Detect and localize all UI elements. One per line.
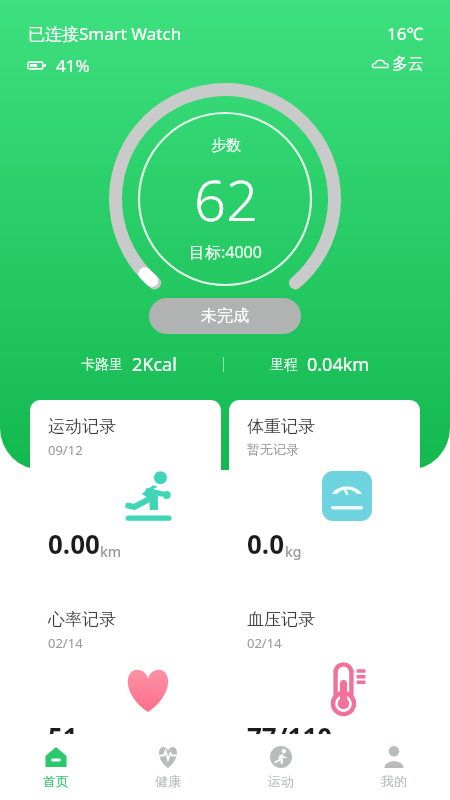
staticText: 已连接Smart Watch — [28, 22, 182, 45]
staticText: 16℃ — [387, 22, 424, 45]
button[interactable]: 健康 — [112, 739, 224, 795]
staticText: 暂无记录 — [247, 441, 299, 457]
other: 运动 — [269, 745, 293, 769]
other: 健康 — [156, 745, 180, 769]
staticText: 步数 — [211, 136, 241, 155]
staticText: km — [100, 542, 122, 561]
staticText: 运动 — [268, 773, 294, 789]
staticText: 41% — [56, 54, 90, 77]
staticText: 心率记录 — [48, 609, 116, 630]
button[interactable]: 运动 — [224, 739, 337, 795]
button[interactable]: 体重记录 — [229, 400, 420, 575]
staticText: 目标:4000 — [189, 241, 262, 263]
staticText: 0.0 — [247, 526, 285, 561]
button[interactable]: 首页 — [0, 739, 112, 795]
staticText: 体重记录 — [247, 416, 315, 437]
staticText: 健康 — [155, 773, 181, 789]
button[interactable]: 我的 — [337, 739, 450, 795]
staticText: 0.04km — [307, 352, 370, 377]
staticText: 卡路里 — [81, 356, 123, 374]
staticText: 里程 — [270, 356, 298, 374]
staticText: 多云 — [392, 54, 424, 74]
other: 我的 — [382, 745, 406, 769]
staticText: 02/14 — [48, 634, 83, 652]
staticText: 09/12 — [48, 441, 83, 459]
staticText: 02/14 — [247, 634, 282, 652]
staticText: 62 — [194, 161, 258, 237]
staticText: 血压记录 — [247, 609, 315, 630]
staticText: 51 — [48, 719, 78, 754]
button[interactable]: 运动记录 — [30, 400, 221, 575]
other: 首页 — [44, 745, 68, 769]
staticText: 未完成 — [201, 306, 249, 326]
button[interactable]: 血压记录 — [229, 593, 420, 768]
staticText: 77/110 — [247, 719, 333, 754]
staticText: 0.00 — [48, 526, 100, 561]
button[interactable]: 未完成 — [149, 298, 301, 334]
staticText: kg — [285, 542, 302, 561]
staticText: 首页 — [43, 773, 69, 789]
staticText: 运动记录 — [48, 416, 116, 437]
staticText: 2Kcal — [132, 352, 177, 377]
staticText: 我的 — [381, 773, 407, 789]
button[interactable]: 心率记录 — [30, 593, 221, 768]
